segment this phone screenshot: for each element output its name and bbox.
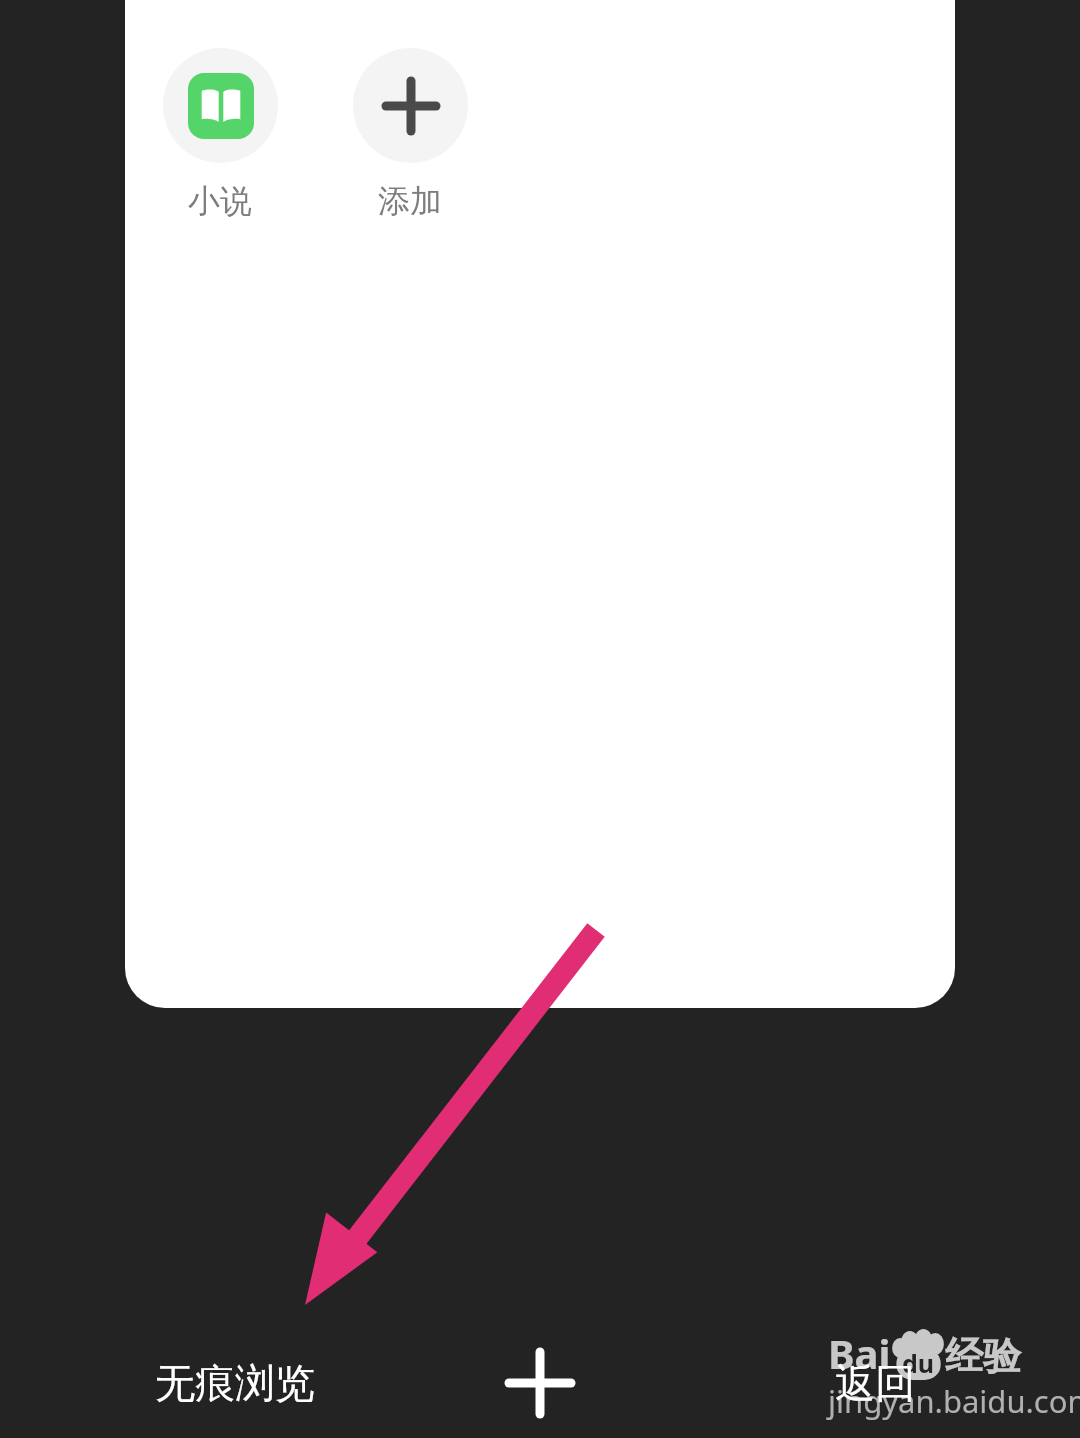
- staticText: jingyan.baidu.com: [828, 1380, 1080, 1422]
- staticText: du: [902, 1346, 935, 1380]
- staticText: 添加: [378, 181, 442, 221]
- staticText: 返回: [835, 1358, 915, 1408]
- staticText: Bai: [828, 1326, 891, 1380]
- button[interactable]: 返回: [790, 1328, 960, 1438]
- staticText: 经验: [945, 1332, 1021, 1380]
- staticText: 小说: [188, 181, 252, 221]
- button[interactable]: 添加: [315, 48, 505, 221]
- staticText: 无痕浏览: [155, 1358, 315, 1408]
- button[interactable]: 小说: [125, 48, 315, 221]
- button[interactable]: 无痕浏览: [120, 1328, 350, 1438]
- button[interactable]: 新建标签页: [470, 1328, 610, 1438]
